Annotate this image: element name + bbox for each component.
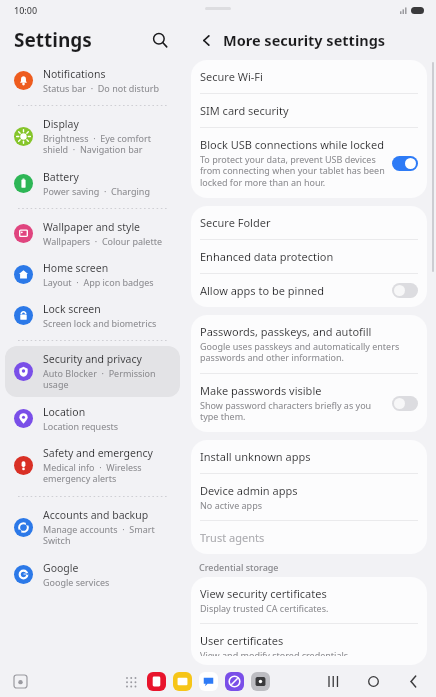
staticText: Passwords, passkeys, and autofill [200,324,372,339]
button[interactable]: Notifications [5,61,180,100]
staticText: Settings [14,27,92,53]
staticText: Trust agents [200,530,265,545]
staticText: Brightness · Eye comfort shield · Naviga… [43,132,174,156]
staticText: Medical info · Wireless emergency alerts [43,461,174,485]
staticText: User certificates [200,633,284,648]
button[interactable]: chat [199,672,218,691]
staticText: Device admin apps [200,483,298,498]
staticText: Display [43,117,79,131]
button[interactable]: Back [193,27,219,53]
staticText: Layout · App icon badges [43,276,154,288]
staticText: 10:00 [14,4,38,16]
button[interactable]: User certificates [200,624,418,665]
staticText: View security certificates [200,586,327,601]
button[interactable]: Safety and emergency [5,440,180,491]
staticText: Install unknown apps [200,449,311,464]
button[interactable]: Google [5,555,180,594]
button[interactable]: Enhanced data protection [200,240,418,273]
button[interactable]: Toggle off [392,396,418,411]
staticText: Home screen [43,261,109,275]
button[interactable]: Search [145,25,175,55]
staticText: Allow apps to be pinned [200,283,324,298]
staticText: Google services [43,576,110,588]
staticText: Security and privacy [43,352,142,366]
button[interactable]: file [173,672,192,691]
staticText: Wallpaper and style [43,220,141,234]
staticText: Location requests [43,420,119,432]
staticText: Screen lock and biometrics [43,317,157,329]
staticText: Accounts and backup [43,508,149,522]
staticText: Google [43,561,79,575]
button[interactable]: Trust agents [200,521,418,554]
button[interactable]: Toggle on [392,156,418,171]
button[interactable]: Install unknown apps [200,440,418,473]
button[interactable]: Block USB connections while locked [200,128,418,198]
staticText: Google uses passkeys and automatically e… [200,340,412,364]
staticText: Wallpapers · Colour palette [43,235,162,247]
button[interactable]: Secure Wi-Fi [200,60,418,93]
button[interactable]: Home [364,672,382,690]
button[interactable]: Make passwords visible [200,374,418,432]
staticText: Enhanced data protection [200,249,334,264]
staticText: Credential storage [199,561,279,573]
staticText: No active apps [200,499,262,511]
staticText: Secure Wi-Fi [200,69,263,84]
button[interactable]: SIM card security [200,94,418,127]
staticText: SIM card security [200,103,289,118]
staticText: Notifications [43,67,106,81]
staticText: View and modify stored credentials. [200,649,351,656]
staticText: Display trusted CA certificates. [200,602,329,614]
button[interactable]: Wallpaper and style [5,214,180,253]
button[interactable]: Allow apps to be pinned [200,274,418,307]
button[interactable]: Device admin apps [200,474,418,520]
button[interactable]: pen [147,672,166,691]
staticText: Secure Folder [200,215,271,230]
staticText: Location [43,405,86,419]
staticText: Show password characters briefly as you … [200,399,386,423]
button[interactable]: Secure Folder [200,206,418,239]
staticText: Battery [43,170,79,184]
button[interactable]: Back [404,672,422,690]
staticText: To protect your data, prevent USB device… [200,153,386,189]
button[interactable]: Display [5,111,180,162]
staticText: Block USB connections while locked [200,137,384,152]
button[interactable]: Location [5,399,180,438]
staticText: Safety and emergency [43,446,153,460]
button[interactable]: Recents [324,672,342,690]
button[interactable]: Lock screen [5,296,180,335]
button[interactable]: Apps [122,673,140,691]
button[interactable]: Home screen [5,255,180,294]
button[interactable]: View security certificates [200,577,418,623]
button[interactable]: camera [251,672,270,691]
staticText: Power saving · Charging [43,185,150,197]
button[interactable]: internet [225,672,244,691]
staticText: More security settings [223,30,386,50]
button[interactable]: Battery [5,164,180,203]
staticText: Lock screen [43,302,101,316]
button[interactable]: Toggle off [392,283,418,298]
staticText: Auto Blocker · Permission usage [43,367,174,391]
button[interactable]: Accounts and backup [5,502,180,553]
button[interactable]: Security and privacy [5,346,180,397]
staticText: Make passwords visible [200,383,322,398]
button[interactable]: Passwords, passkeys, and autofill [200,315,418,373]
button[interactable]: Recent app [12,673,28,689]
staticText: Manage accounts · Smart Switch [43,523,174,547]
staticText: Status bar · Do not disturb [43,82,159,94]
